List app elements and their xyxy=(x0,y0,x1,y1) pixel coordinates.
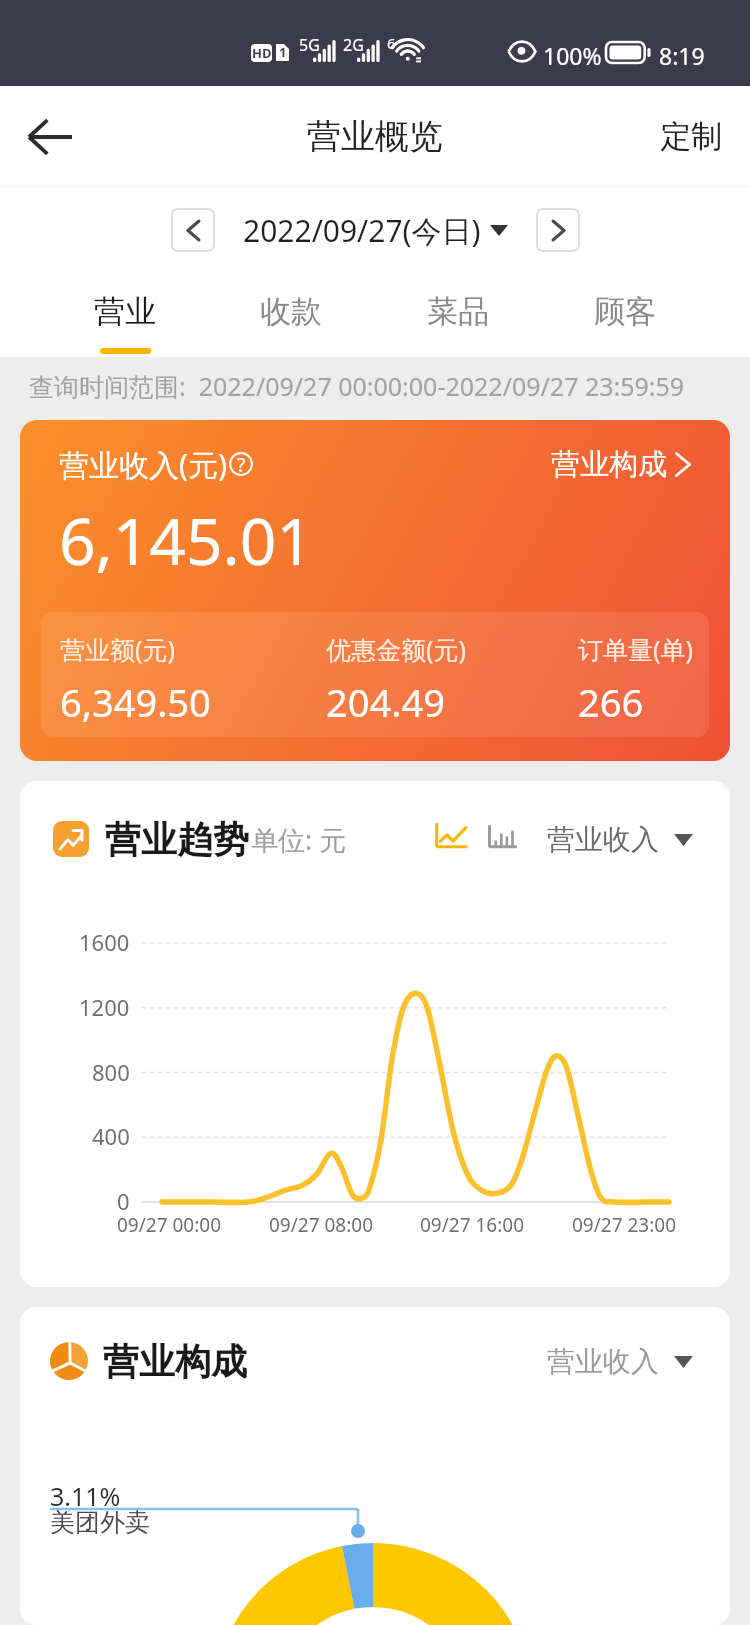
staticText: 营业收入(元) xyxy=(59,444,227,485)
staticText: ? xyxy=(237,452,246,476)
staticText: 1 xyxy=(279,43,287,61)
staticText: 3.11% xyxy=(50,1479,121,1513)
button[interactable]: 营业收入 xyxy=(547,1344,693,1379)
button[interactable]: 营业收入(元) xyxy=(20,420,730,761)
button[interactable]: 菜品 xyxy=(374,272,541,357)
staticText: 查询时间范围: 2022/09/27 00:00:00-2022/09/27 2… xyxy=(29,369,685,403)
staticText: 营业额(元) xyxy=(60,632,176,666)
staticText: 营业收入 xyxy=(547,1344,659,1379)
staticText: 单位: 元 xyxy=(251,821,347,858)
staticText: 09/27 08:00 xyxy=(269,1212,374,1238)
staticText: 6 xyxy=(387,33,396,53)
staticText: 2G xyxy=(343,34,364,56)
staticText: 营业构成 xyxy=(551,446,667,483)
button[interactable]: 定制 xyxy=(632,86,750,187)
staticText: 0 xyxy=(117,1186,130,1216)
staticText: 6,349.50 xyxy=(60,676,211,728)
staticText: 1200 xyxy=(79,992,130,1022)
staticText: 顾客 xyxy=(594,292,656,331)
staticText: 收款 xyxy=(260,292,322,331)
button[interactable]: Line chart xyxy=(434,822,468,856)
staticText: 订单量(单) xyxy=(578,632,694,666)
staticText: 美团外卖 xyxy=(50,1507,150,1538)
button[interactable]: 2022/09/27(今日) xyxy=(243,210,508,251)
staticText: 营业收入 xyxy=(547,822,659,857)
staticText: 营业概览 xyxy=(307,115,443,158)
button[interactable]: 营业收入 xyxy=(547,822,693,857)
staticText: 100% xyxy=(543,40,602,71)
staticText: 营业 xyxy=(94,292,156,331)
staticText: 定制 xyxy=(660,117,722,156)
button[interactable]: 顾客 xyxy=(541,272,708,357)
staticText: 09/27 23:00 xyxy=(572,1212,677,1238)
button[interactable]: Next day xyxy=(536,208,580,252)
staticText: 09/27 16:00 xyxy=(420,1212,525,1238)
button[interactable]: Help xyxy=(229,452,253,476)
staticText: 营业构成 xyxy=(103,1339,247,1384)
staticText: 266 xyxy=(578,676,644,728)
staticText: 09/27 00:00 xyxy=(117,1212,222,1238)
staticText: 800 xyxy=(92,1057,130,1087)
staticText: HD xyxy=(252,44,272,62)
staticText: 营业趋势 xyxy=(105,817,249,862)
staticText: 1600 xyxy=(79,927,130,957)
button[interactable]: 收款 xyxy=(208,272,374,357)
button[interactable]: Bar chart xyxy=(487,824,518,855)
staticText: 8:19 xyxy=(659,40,705,71)
staticText: 400 xyxy=(92,1121,130,1151)
staticText: 204.49 xyxy=(326,676,445,728)
staticText: 菜品 xyxy=(427,292,489,331)
button[interactable]: Back xyxy=(0,87,100,187)
button[interactable]: Previous day xyxy=(171,208,215,252)
staticText: 优惠金额(元) xyxy=(326,632,467,666)
button[interactable]: 营业构成 xyxy=(551,446,691,483)
staticText: 6,145.01 xyxy=(59,497,313,584)
button[interactable]: 营业 xyxy=(42,272,208,357)
staticText: 2022/09/27(今日) xyxy=(243,210,481,251)
staticText: 5G xyxy=(299,34,320,56)
